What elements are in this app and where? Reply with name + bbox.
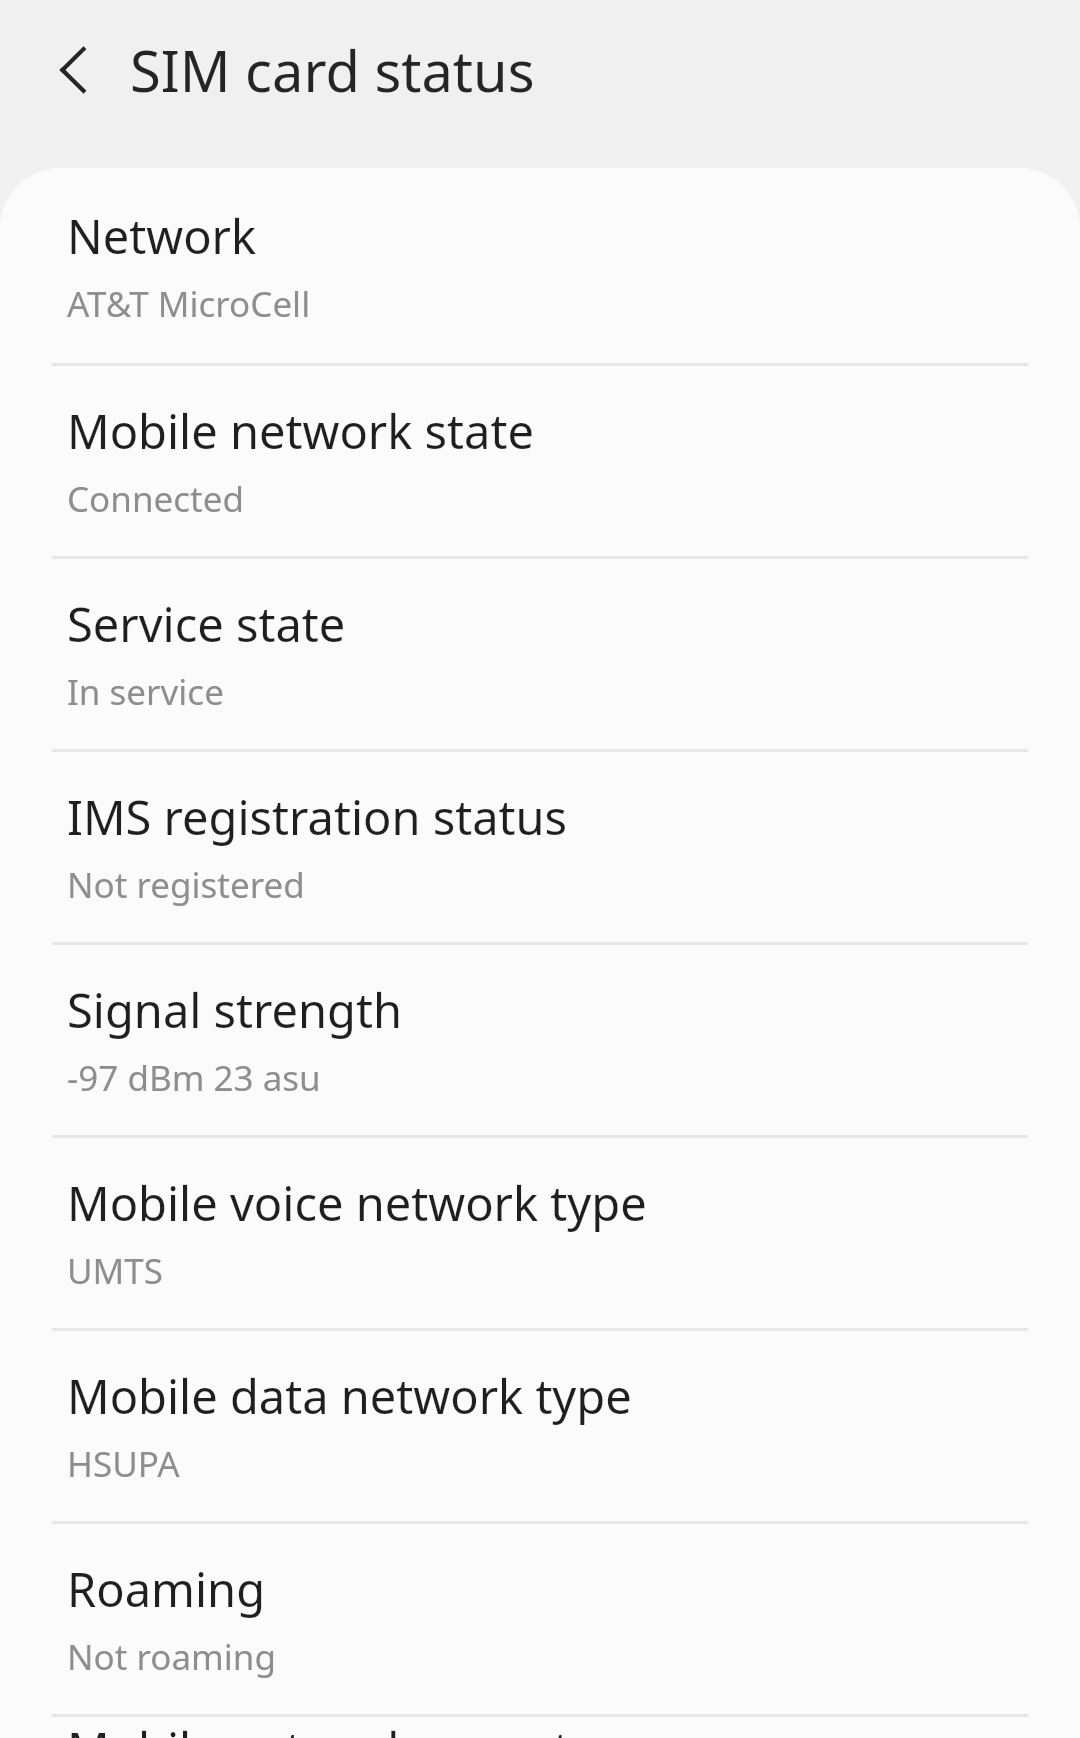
staticText: SIM card status — [130, 32, 535, 108]
staticText: Not registered — [67, 861, 305, 909]
staticText: HSUPA — [67, 1440, 180, 1488]
staticText: Connected — [67, 475, 244, 523]
staticText: IMS registration status — [67, 785, 568, 849]
button[interactable]: Mobile network operator — [0, 1717, 1080, 1738]
staticText: In service — [67, 668, 224, 716]
button[interactable]: Network — [0, 168, 1080, 363]
staticText: -97 dBm 23 asu — [67, 1054, 321, 1102]
staticText: UMTS — [67, 1247, 164, 1295]
button[interactable]: Mobile voice network type — [0, 1138, 1080, 1328]
button[interactable]: Service state — [0, 559, 1080, 749]
staticText: AT&T MicroCell — [67, 280, 311, 328]
staticText: Network — [67, 204, 257, 268]
staticText: Mobile data network type — [67, 1364, 632, 1428]
button[interactable]: IMS registration status — [0, 752, 1080, 942]
button[interactable]: Signal strength — [0, 945, 1080, 1135]
staticText: Not roaming — [67, 1633, 276, 1681]
staticText: Mobile voice network type — [67, 1171, 647, 1235]
button[interactable]: Mobile network state — [0, 366, 1080, 556]
staticText: Mobile network state — [67, 399, 534, 463]
staticText: Service state — [67, 592, 346, 656]
staticText: Roaming — [67, 1557, 266, 1621]
staticText: Signal strength — [67, 978, 403, 1042]
button[interactable]: Mobile data network type — [0, 1331, 1080, 1521]
staticText: Mobile network operator — [67, 1717, 619, 1738]
button[interactable]: Roaming — [0, 1524, 1080, 1714]
button[interactable]: Back — [30, 28, 114, 112]
